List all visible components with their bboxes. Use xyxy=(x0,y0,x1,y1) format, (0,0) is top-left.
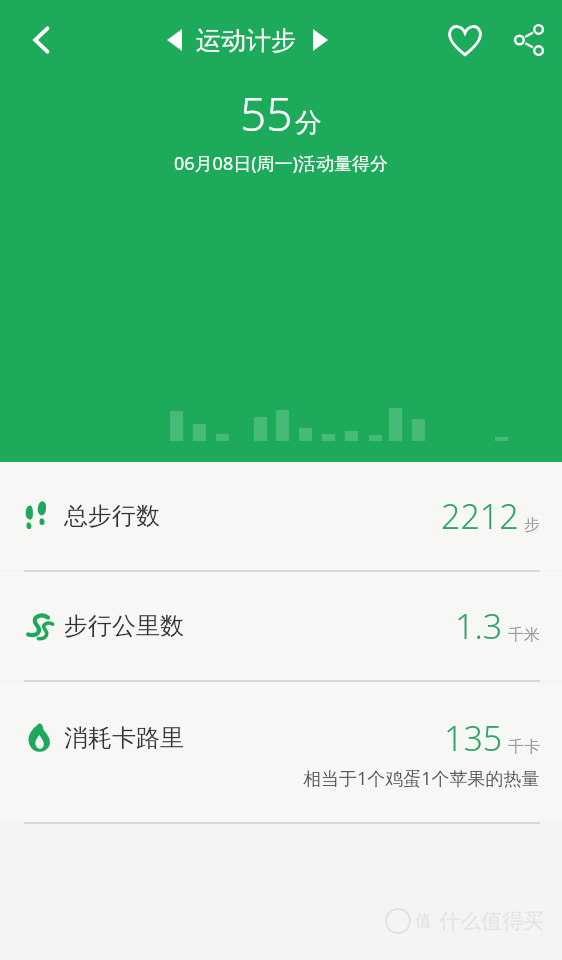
button[interactable]: Share xyxy=(496,7,562,73)
button[interactable]: 消耗卡路里 xyxy=(0,682,562,822)
staticText: 什么值得买 xyxy=(439,908,544,934)
staticText: 值 xyxy=(415,911,431,931)
button[interactable]: 步行公里数 xyxy=(0,572,562,680)
staticText: 1.3 xyxy=(455,603,503,649)
staticText: 步行公里数 xyxy=(64,611,184,641)
staticText: 运动计步 xyxy=(196,25,296,56)
button[interactable]: 总步行数 xyxy=(0,462,562,570)
staticText: 步 xyxy=(524,515,540,535)
staticText: 55 xyxy=(240,82,293,145)
staticText: 千卡 xyxy=(508,737,540,757)
button[interactable]: 运动计步 xyxy=(196,25,296,56)
staticText: 分 xyxy=(295,106,322,140)
staticText: 2212 xyxy=(441,493,519,539)
button[interactable]: Next day xyxy=(296,16,344,64)
staticText: 千米 xyxy=(508,625,540,645)
staticText: 06月08日(周一)活动量得分 xyxy=(174,151,388,176)
staticText: 135 xyxy=(444,715,503,761)
button[interactable]: Previous day xyxy=(152,18,196,62)
staticText: 相当于1个鸡蛋1个苹果的热量 xyxy=(303,766,540,791)
button[interactable]: Back xyxy=(0,0,84,80)
staticText: 消耗卡路里 xyxy=(64,723,184,753)
staticText: 总步行数 xyxy=(64,501,160,531)
button[interactable]: Favorite xyxy=(434,9,496,71)
